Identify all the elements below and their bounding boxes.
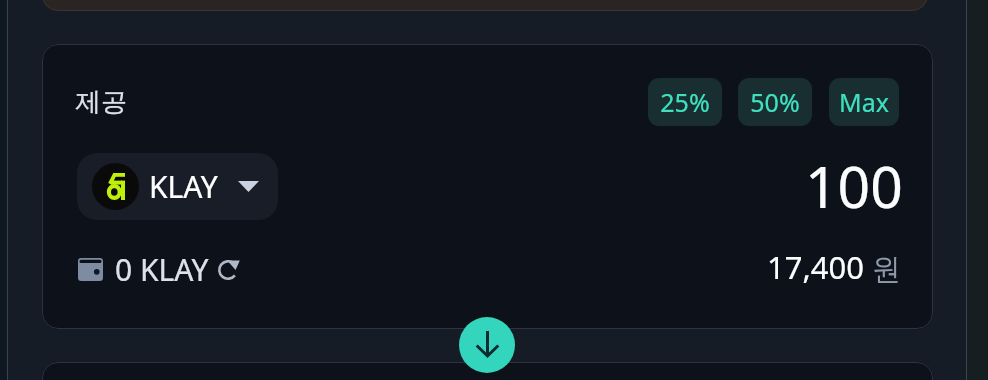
button[interactable]: Refresh balance [218,260,240,280]
button[interactable]: 50% [738,78,812,126]
staticText: 제공 [75,86,127,119]
staticText: 0 KLAY [115,249,209,290]
staticText: KLAY [149,166,218,207]
button[interactable]: Max [829,78,899,126]
button[interactable]: 25% [648,78,722,126]
button[interactable]: Swap direction [459,317,515,373]
staticText: 50% [750,85,800,119]
staticText: 17,400 [767,246,864,288]
staticText: 25% [660,85,710,119]
button[interactable]: KLAY [77,153,278,220]
staticText: Max [839,85,889,119]
staticText: 원 [872,251,901,288]
staticText: 100 [805,147,903,225]
button[interactable] [42,0,928,11]
